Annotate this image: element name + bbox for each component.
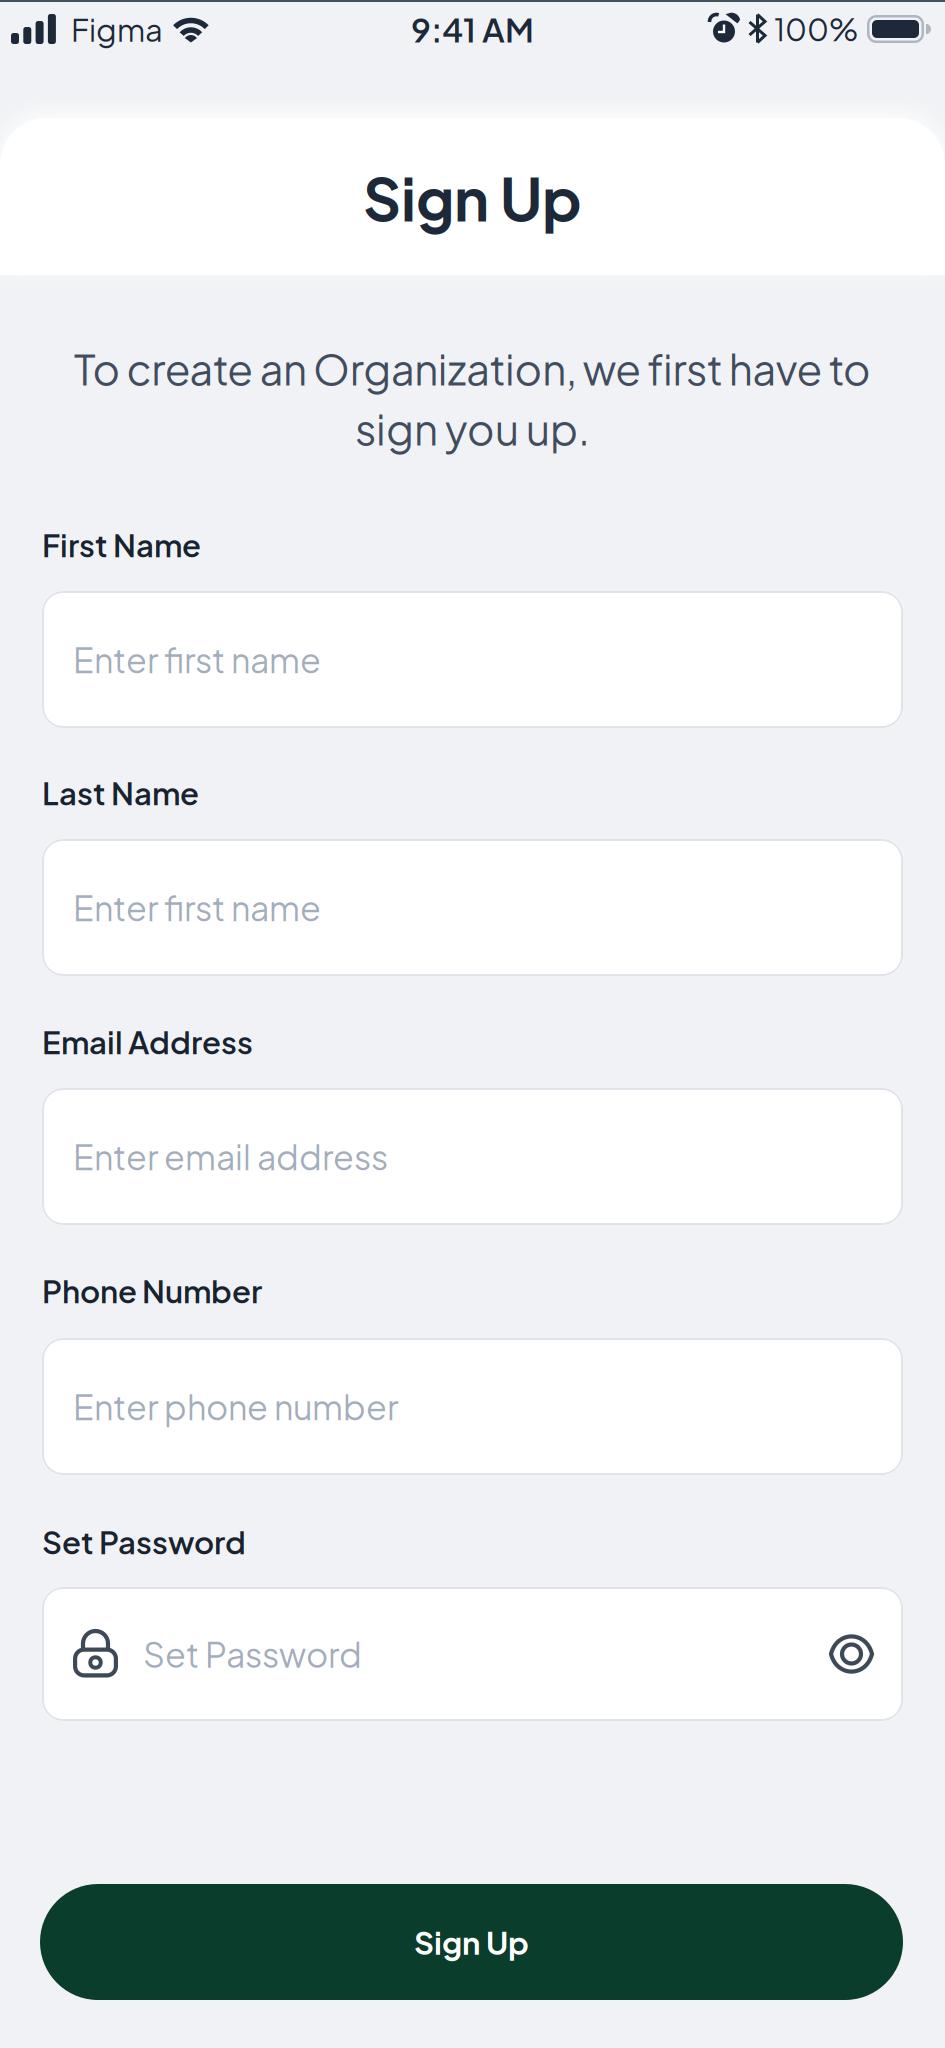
staticText: Enter phone number xyxy=(73,1385,398,1428)
button[interactable]: Set Password xyxy=(42,1587,903,1721)
button[interactable]: Enter first name xyxy=(42,839,903,976)
staticText: 100% xyxy=(774,10,858,48)
staticText: 9:41 AM xyxy=(411,8,534,50)
staticText: To create an Organization, we first have… xyxy=(74,342,871,395)
staticText: sign you up. xyxy=(355,402,590,455)
button[interactable]: Show password xyxy=(829,1635,874,1673)
staticText: Last Name xyxy=(42,773,199,812)
staticText: First Name xyxy=(42,525,201,564)
button[interactable]: Sign Up xyxy=(40,1884,903,2000)
staticText: Figma xyxy=(71,9,163,49)
staticText: Phone Number xyxy=(42,1271,262,1310)
staticText: Sign Up xyxy=(414,1922,529,1962)
staticText: Enter email address xyxy=(73,1135,388,1178)
button[interactable]: Enter phone number xyxy=(42,1338,903,1475)
staticText: Enter first name xyxy=(73,886,321,929)
staticText: Set Password xyxy=(143,1633,362,1675)
staticText: Set Password xyxy=(42,1522,246,1561)
staticText: Enter first name xyxy=(73,638,321,681)
button[interactable]: Enter first name xyxy=(42,591,903,728)
button[interactable]: Enter email address xyxy=(42,1088,903,1225)
staticText: Sign Up xyxy=(363,160,582,235)
staticText: Email Address xyxy=(42,1022,253,1061)
